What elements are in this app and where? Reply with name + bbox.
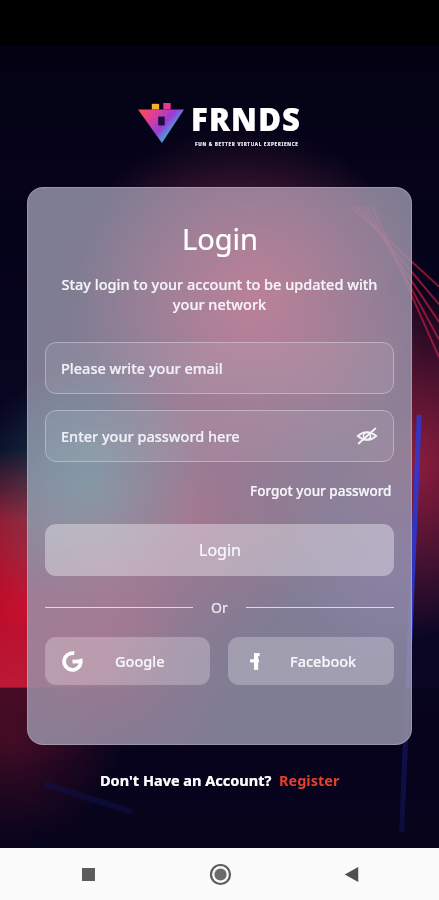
button[interactable]: Please write your email (45, 342, 394, 394)
button[interactable]: Login (45, 524, 394, 576)
button[interactable]: Home (200, 854, 240, 894)
staticText: Please write your email (61, 358, 378, 378)
staticText: Don't Have an Account? (100, 770, 272, 790)
staticText: FRNDS (191, 98, 302, 140)
button[interactable]: Facebook (228, 637, 394, 685)
button[interactable]: Recent apps (68, 854, 108, 894)
button[interactable]: Back (331, 854, 371, 894)
button[interactable]: Don't Have an Account? (0, 770, 439, 790)
staticText: Enter your password here (61, 426, 356, 446)
other: Show password (356, 425, 378, 447)
button[interactable]: Google (45, 637, 210, 685)
staticText: FUN & BETTER VIRTUAL EXPERIENCE (195, 141, 299, 147)
button[interactable]: Enter your password here (45, 410, 394, 462)
staticText: Forgot your password (250, 482, 392, 500)
button[interactable]: Forgot your password (248, 480, 394, 502)
staticText: Facebook (290, 651, 357, 671)
staticText: Login (199, 539, 241, 561)
staticText: Google (115, 651, 165, 671)
staticText: Or (211, 598, 228, 617)
staticText: Stay login to your account to be updated… (45, 274, 394, 314)
staticText: Register (279, 770, 340, 790)
staticText: Login (182, 219, 258, 258)
